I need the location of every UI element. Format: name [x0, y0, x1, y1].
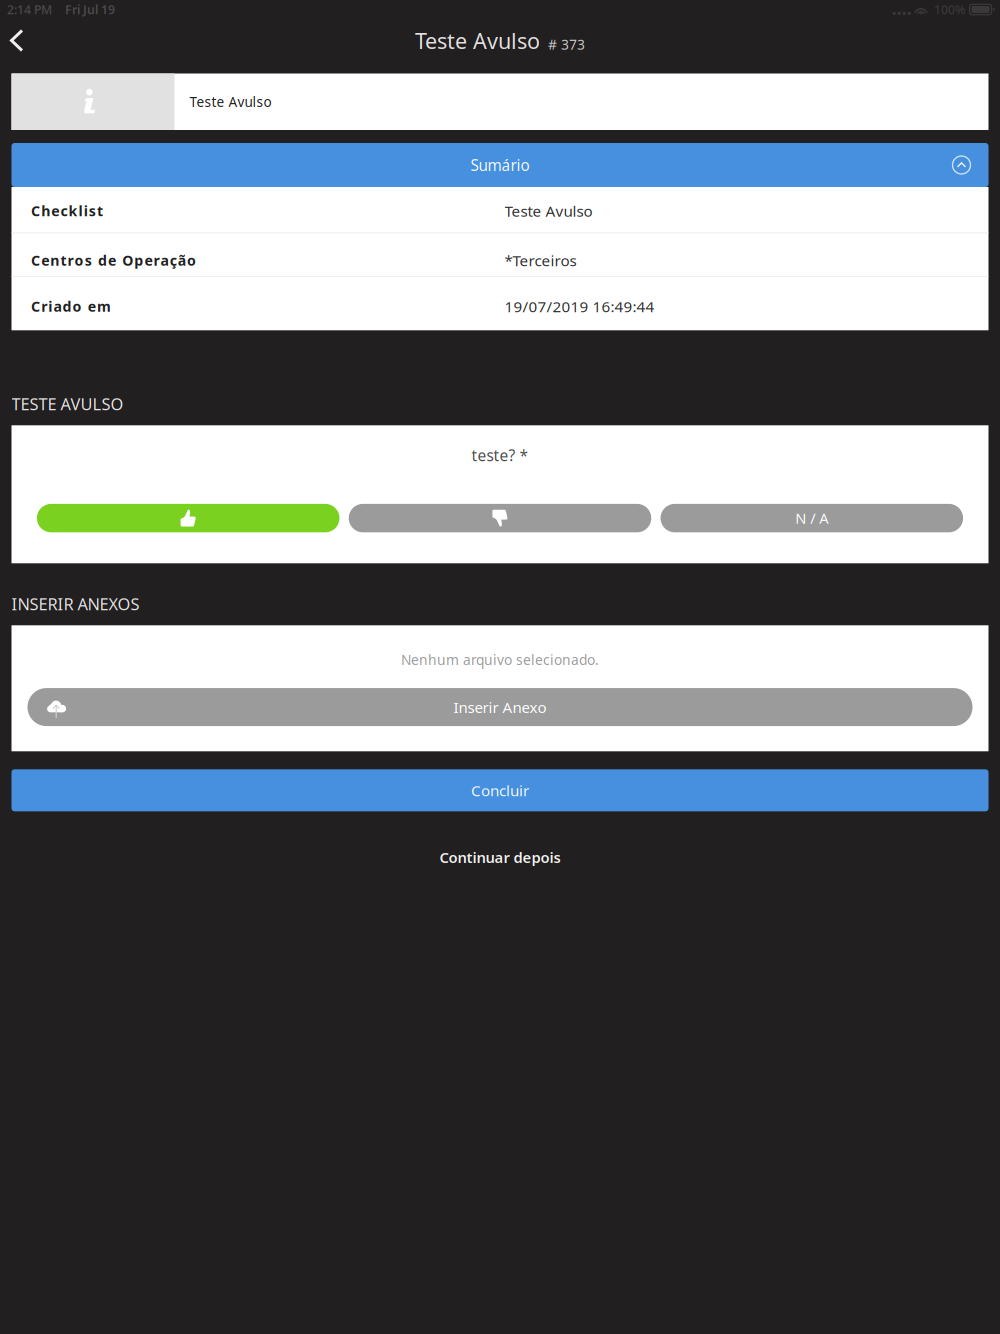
staticText: Criado em — [31, 297, 111, 316]
staticText: # 373 — [548, 35, 585, 54]
button[interactable]: Voltar — [0, 19, 34, 62]
staticText: TESTE AVULSO — [11, 393, 123, 415]
button[interactable]: Sim — [37, 504, 339, 532]
button[interactable]: N / A — [660, 504, 963, 532]
staticText: Nenhum arquivo selecionado. — [401, 650, 599, 669]
staticText: 100% — [934, 1, 965, 18]
staticText: Concluir — [471, 780, 529, 801]
button[interactable]: Continuar depois — [0, 841, 1000, 873]
staticText: N / A — [795, 508, 828, 528]
staticText: Continuar depois — [439, 847, 560, 867]
staticText: Checklist — [31, 201, 103, 220]
button[interactable]: Sumário — [11, 143, 988, 187]
staticText: Fri Jul 19 — [65, 1, 115, 18]
staticText: Sumário — [470, 155, 529, 175]
button[interactable]: Inserir Anexo — [27, 688, 972, 726]
staticText: Teste Avulso — [505, 200, 593, 221]
button[interactable]: Concluir — [11, 769, 988, 811]
staticText: Teste Avulso — [415, 26, 540, 55]
staticText: Centros de Operação — [31, 251, 196, 270]
staticText: INSERIR ANEXOS — [11, 593, 139, 615]
staticText: *Terceiros — [505, 250, 577, 271]
staticText: 19/07/2019 16:49:44 — [505, 296, 655, 317]
button[interactable]: Não — [349, 504, 651, 532]
staticText: Teste Avulso — [189, 92, 271, 111]
staticText: teste? * — [471, 445, 528, 466]
staticText: Inserir Anexo — [453, 697, 546, 717]
staticText: 2:14 PM — [7, 1, 52, 18]
